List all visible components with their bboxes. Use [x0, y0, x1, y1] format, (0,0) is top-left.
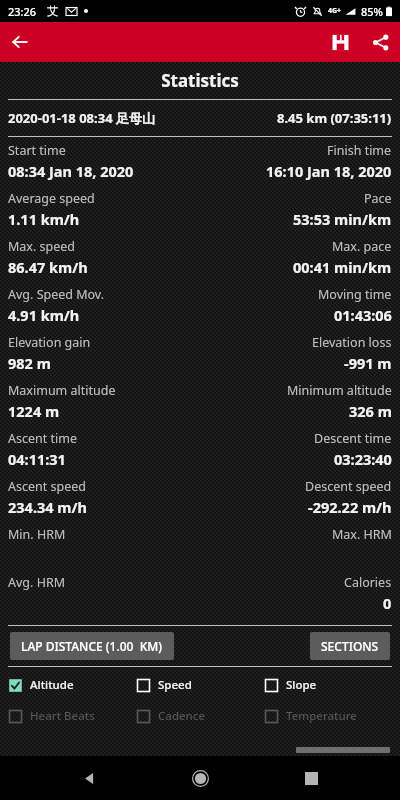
staticText: Pace: [364, 190, 392, 207]
staticText: Avg. Speed Mov.: [8, 286, 105, 303]
staticText: Altitude: [30, 677, 74, 693]
staticText: Max. pace: [332, 238, 392, 255]
staticText: Avg. HRM: [8, 574, 66, 591]
button[interactable]: Average speed: [0, 190, 400, 238]
button[interactable]: LAP DISTANCE (1.00 KM): [10, 632, 174, 660]
staticText: Max. speed: [8, 238, 76, 255]
staticText: 艾: [47, 4, 58, 18]
button[interactable]: Avg. HRM: [0, 574, 400, 622]
staticText: 01:43:06: [334, 305, 392, 325]
button[interactable]: Cadence: [136, 705, 264, 727]
button[interactable]: Back: [0, 22, 40, 62]
staticText: Heart Beats: [30, 708, 95, 724]
staticText: 982 m: [8, 353, 51, 373]
button[interactable]: Altitude: [8, 674, 136, 696]
staticText: Moving time: [318, 286, 392, 303]
button[interactable]: Heart Beats: [8, 705, 136, 727]
staticText: Temperature: [286, 708, 357, 724]
button[interactable]: Ascent time: [0, 430, 400, 478]
button[interactable]: Min. HRM: [0, 526, 400, 574]
staticText: 08:34 Jan 18, 2020: [8, 161, 134, 181]
staticText: Elevation loss: [312, 334, 392, 351]
staticText: Ascent speed: [8, 478, 86, 495]
staticText: -292.22 m/h: [308, 497, 392, 517]
button[interactable]: Speed: [136, 674, 264, 696]
staticText: Minimum altitude: [287, 382, 392, 399]
staticText: 2020-01-18 08:34 足母山: [8, 109, 155, 127]
staticText: 04:11:31: [8, 449, 66, 469]
button[interactable]: Start time: [0, 142, 400, 190]
staticText: Min. HRM: [8, 526, 66, 543]
button[interactable]: SECTIONS: [310, 632, 390, 660]
button[interactable]: Recents: [289, 756, 333, 800]
button[interactable]: Share: [360, 22, 400, 62]
button[interactable]: 2020-01-18 08:34 足母山: [0, 100, 400, 136]
button[interactable]: Back: [67, 756, 111, 800]
staticText: 53:53 min/km: [293, 209, 392, 229]
button[interactable]: Elevation gain: [0, 334, 400, 382]
button[interactable]: Save: [320, 22, 360, 62]
staticText: 1.11 km/h: [8, 209, 80, 229]
button[interactable]: Home: [178, 756, 222, 800]
staticText: Statistics: [0, 69, 400, 92]
staticText: Max. HRM: [332, 526, 392, 543]
staticText: 1224 m: [8, 401, 60, 421]
staticText: 00:41 min/km: [293, 257, 392, 277]
staticText: 03:23:40: [334, 449, 392, 469]
button[interactable]: Temperature: [264, 705, 392, 727]
staticText: 0: [383, 593, 392, 613]
staticText: Descent speed: [305, 478, 392, 495]
staticText: 4G+: [328, 6, 342, 16]
staticText: 85%: [361, 4, 383, 19]
staticText: Start time: [8, 142, 66, 159]
staticText: Slope: [286, 677, 317, 693]
staticText: LAP DISTANCE (1.00 KM): [21, 638, 163, 654]
button[interactable]: Ascent speed: [0, 478, 400, 526]
button[interactable]: Avg. Speed Mov.: [0, 286, 400, 334]
staticText: Finish time: [327, 142, 392, 159]
staticText: 326 m: [349, 401, 392, 421]
staticText: 4.91 km/h: [8, 305, 80, 325]
staticText: Descent time: [314, 430, 392, 447]
button[interactable]: Maximum altitude: [0, 382, 400, 430]
staticText: Cadence: [158, 708, 206, 724]
staticText: Maximum altitude: [8, 382, 116, 399]
staticText: Speed: [158, 677, 192, 693]
staticText: Calories: [344, 574, 392, 591]
button[interactable]: Max. speed: [0, 238, 400, 286]
button[interactable]: Slope: [264, 674, 392, 696]
staticText: Elevation gain: [8, 334, 91, 351]
staticText: Average speed: [8, 190, 95, 207]
staticText: 23:26: [8, 4, 37, 19]
staticText: 16:10 Jan 18, 2020: [266, 161, 392, 181]
staticText: 86.47 km/h: [8, 257, 88, 277]
staticText: Ascent time: [8, 430, 77, 447]
staticText: 234.34 m/h: [8, 497, 87, 517]
staticText: SECTIONS: [321, 638, 379, 654]
staticText: 8.45 km (07:35:11): [277, 109, 392, 127]
staticText: -991 m: [344, 353, 392, 373]
